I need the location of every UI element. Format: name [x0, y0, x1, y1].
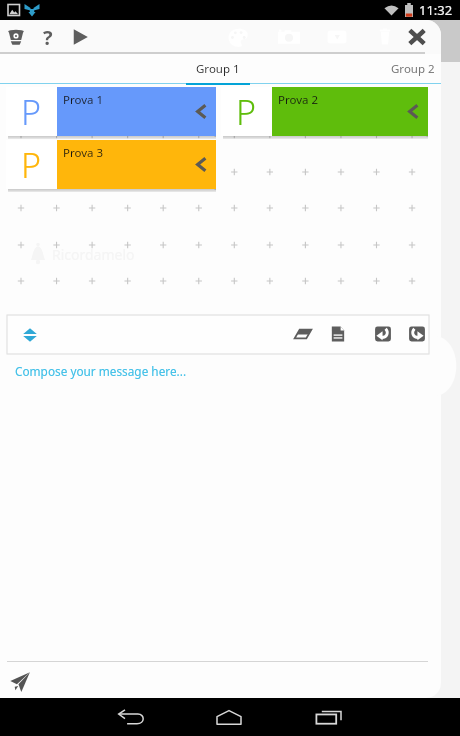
- staticText: Compose your message here...: [15, 363, 187, 379]
- staticText: P: [21, 142, 42, 188]
- staticText: 11:32: [419, 1, 453, 19]
- button[interactable]: P: [221, 87, 428, 136]
- staticText: Prova 2: [278, 92, 319, 108]
- staticText: Group 2: [391, 61, 435, 77]
- button[interactable]: Close: [405, 20, 429, 54]
- button[interactable]: Redo: [406, 315, 428, 352]
- staticText: Prova 3: [63, 145, 104, 161]
- button[interactable]: Home: [210, 698, 248, 736]
- staticText: Prova 1: [63, 92, 104, 108]
- button[interactable]: Reorder: [15, 320, 45, 350]
- button[interactable]: Play: [67, 20, 93, 54]
- staticText: ?: [43, 24, 53, 51]
- button[interactable]: Back: [112, 698, 150, 736]
- button[interactable]: Delete: [372, 20, 398, 54]
- button[interactable]: Help: [35, 20, 61, 54]
- staticText: Ricordamelo: [52, 245, 135, 264]
- button[interactable]: Undo: [372, 315, 394, 352]
- staticText: P: [236, 89, 257, 135]
- button[interactable]: Group 1: [186, 54, 250, 83]
- button[interactable]: Document: [327, 315, 349, 352]
- button[interactable]: Video: [324, 20, 350, 54]
- button[interactable]: Record: [3, 20, 29, 54]
- button[interactable]: Camera: [276, 20, 302, 54]
- button[interactable]: Recent apps: [310, 698, 348, 736]
- staticText: Group 1: [196, 61, 240, 77]
- button[interactable]: P: [6, 87, 216, 136]
- button[interactable]: Send: [4, 666, 36, 698]
- staticText: P: [21, 89, 42, 135]
- button[interactable]: P: [6, 140, 216, 189]
- button[interactable]: Eraser: [292, 315, 314, 352]
- button[interactable]: Group 2: [381, 54, 441, 83]
- button[interactable]: Palette: [226, 20, 252, 54]
